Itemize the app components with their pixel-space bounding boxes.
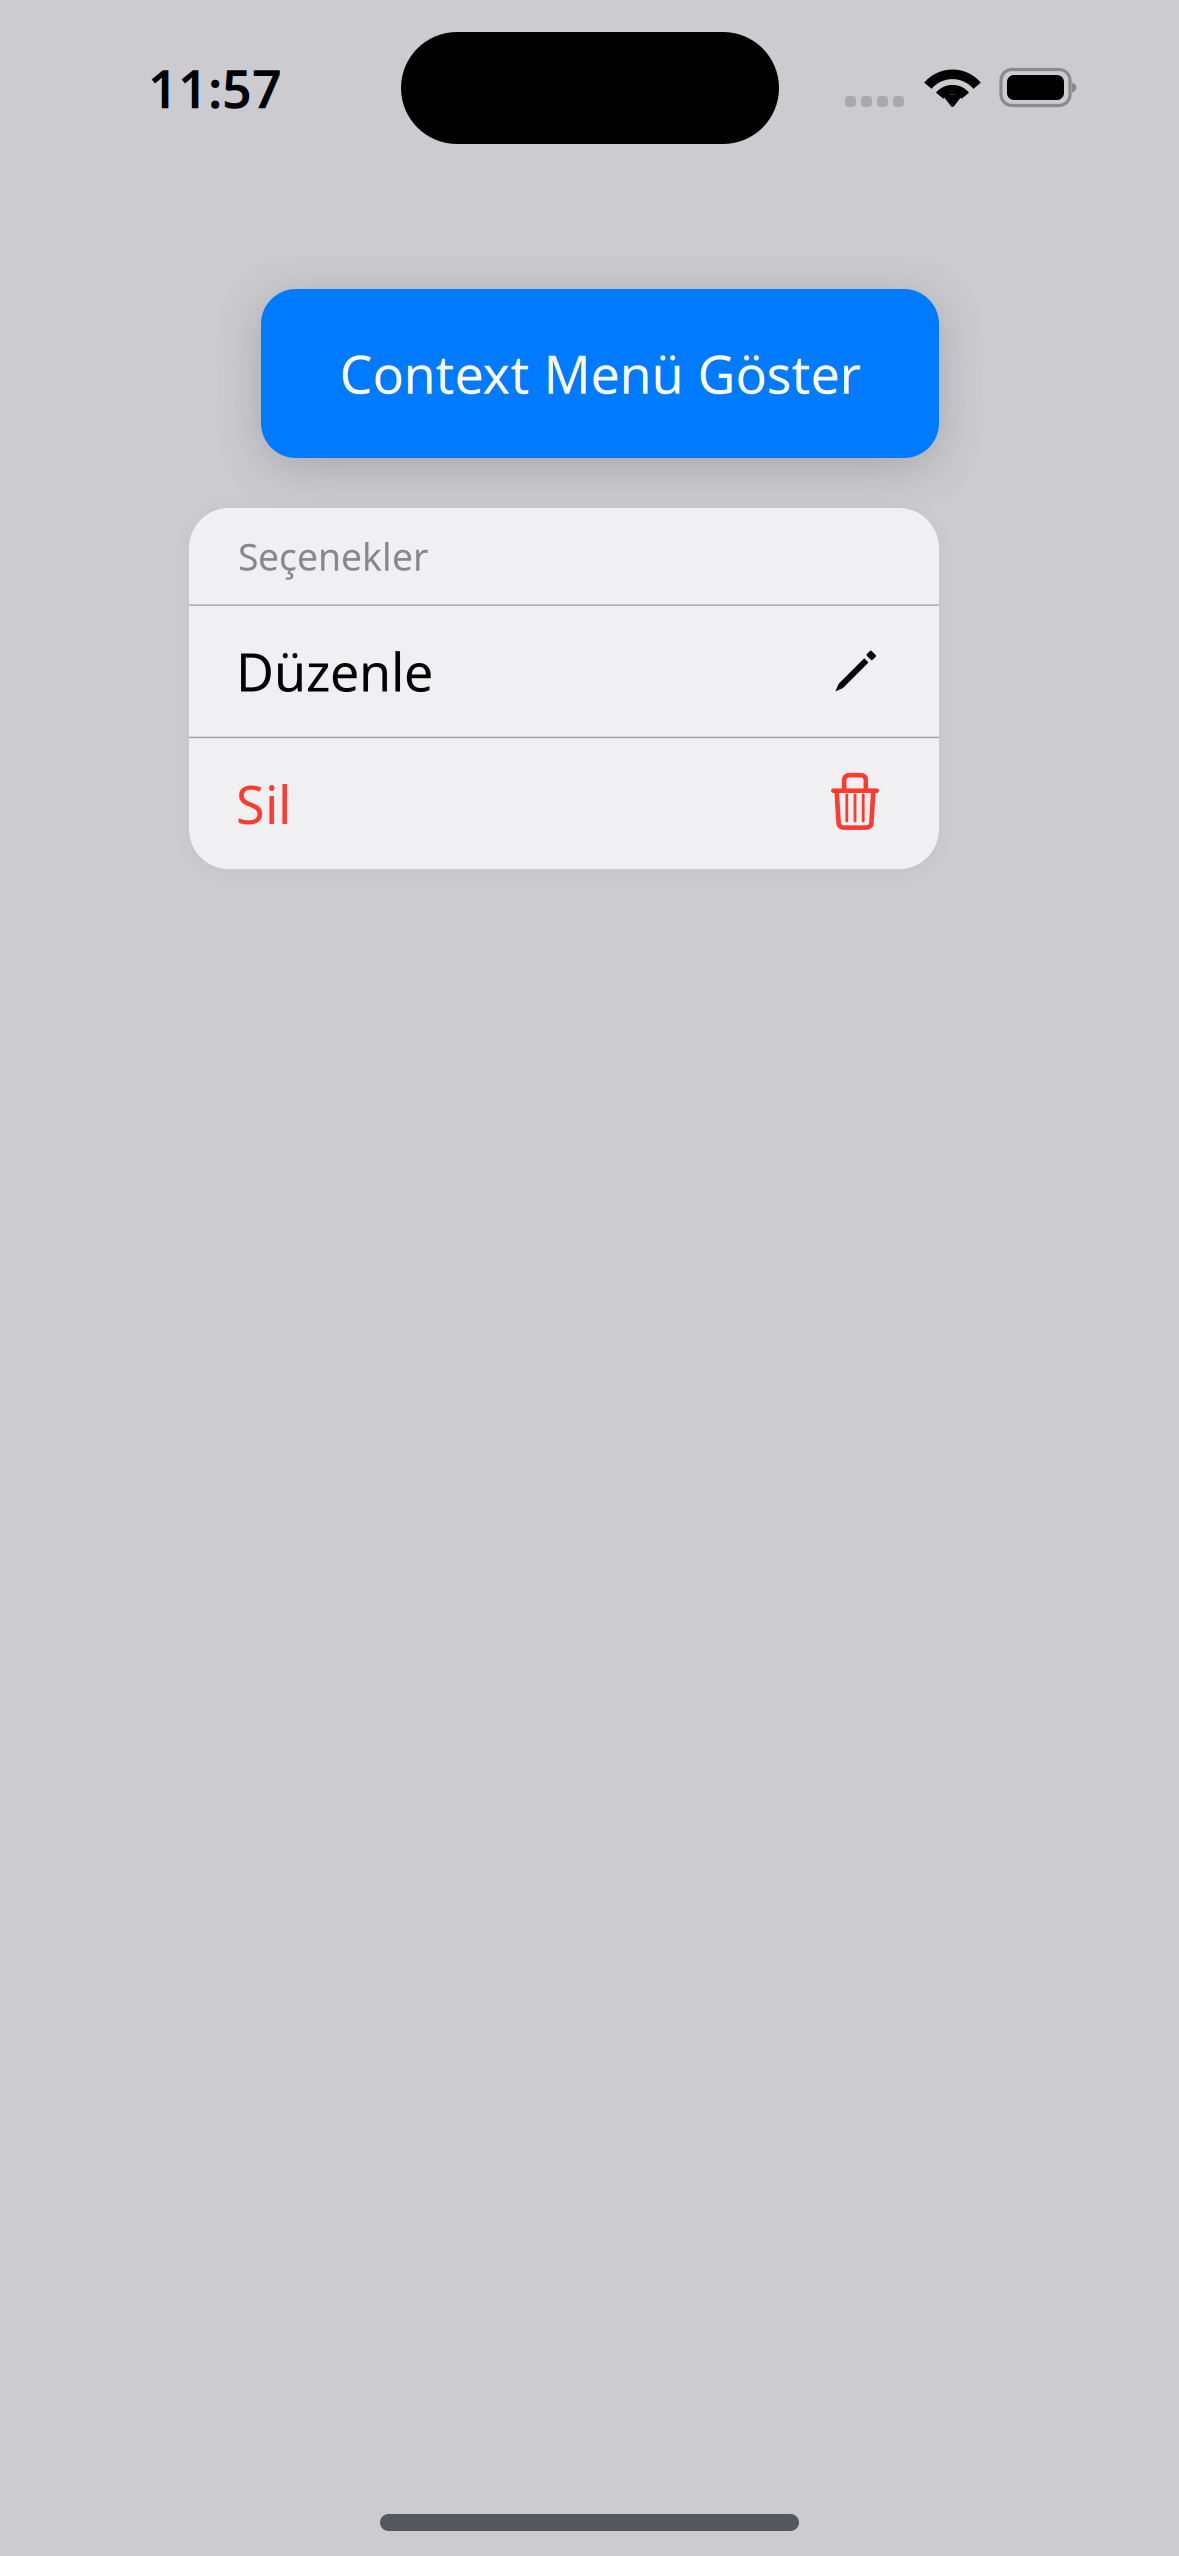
staticText: Sil	[236, 769, 291, 838]
button[interactable]: Context Menü Göster	[261, 289, 939, 458]
staticText: Düzenle	[236, 637, 433, 706]
staticText: Context Menü Göster	[339, 339, 860, 408]
staticText: 11:57	[148, 53, 282, 123]
button[interactable]: Sil	[189, 738, 939, 869]
staticText: Seçenekler	[238, 531, 428, 581]
button[interactable]: Düzenle	[189, 606, 939, 737]
